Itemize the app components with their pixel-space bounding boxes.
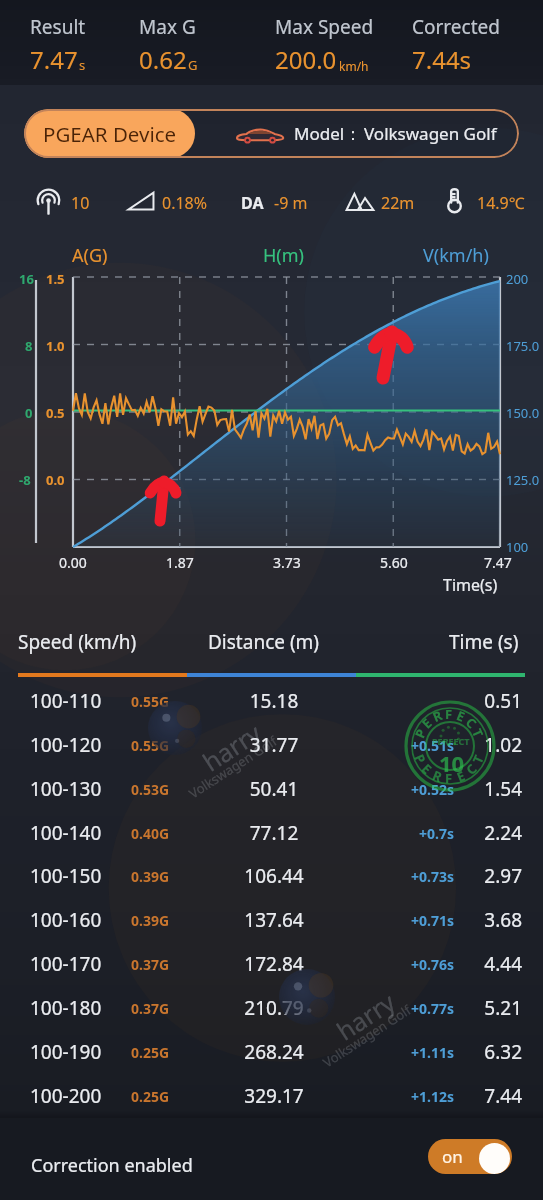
staticText: 7.44s (412, 43, 472, 76)
staticText: A(G) (72, 243, 108, 268)
staticText: G (188, 56, 198, 74)
staticText: -8 (19, 471, 31, 489)
staticText: harry (196, 716, 267, 778)
staticText: 0.55G (131, 692, 170, 711)
staticText: 150.0 (506, 404, 540, 422)
staticText: +1.12s (388, 1087, 454, 1106)
staticText: 0.53G (131, 780, 170, 799)
staticText: 0.39G (131, 911, 170, 930)
staticText: Time (s) (449, 629, 519, 655)
staticText: Volkswagen Golf (364, 122, 497, 145)
staticText: 1.54 (462, 776, 522, 802)
other: Slope (128, 191, 154, 211)
staticText: Volkswagen Golf (319, 1001, 415, 1071)
staticText: 0.51 (462, 688, 522, 714)
button[interactable]: 100-150 (0, 855, 543, 898)
button[interactable]: 100-190 (0, 1031, 543, 1074)
staticText: Volkswagen Golf (185, 732, 281, 802)
staticText: +0.77s (388, 999, 454, 1018)
staticText: 1.02 (462, 732, 522, 758)
staticText: 0.40G (131, 824, 170, 843)
staticText: +0.71s (388, 911, 454, 930)
staticText: 31.77 (200, 732, 348, 758)
staticText: 3.68 (462, 907, 522, 933)
staticText: 77.12 (200, 820, 348, 846)
staticText: 50.41 (200, 776, 348, 802)
staticText: 0.62 (139, 43, 187, 76)
staticText: 100-180 (30, 995, 102, 1021)
staticText: 100-130 (30, 776, 102, 802)
staticText: 100-160 (30, 907, 102, 933)
staticText: s (79, 56, 86, 74)
staticText: 2.24 (462, 820, 522, 846)
staticText: 100-190 (30, 1039, 102, 1065)
staticText: 175.0 (506, 337, 540, 355)
staticText: Model： (294, 122, 362, 145)
staticText: Distance (m) (208, 629, 320, 655)
button[interactable]: 100-170 (0, 943, 543, 986)
button[interactable]: 100-200 (0, 1075, 543, 1118)
staticText: 100-150 (30, 863, 102, 889)
button[interactable]: 100-120 (0, 724, 543, 767)
other: Temperature (446, 187, 463, 213)
staticText: 8 (25, 337, 33, 355)
staticText: 125.0 (506, 471, 540, 489)
staticText: T (468, 752, 488, 766)
staticText: 210.79 (200, 995, 348, 1021)
button[interactable]: 100-110 (0, 680, 543, 723)
staticText: 0.00 (59, 553, 87, 572)
staticText: Correction enabled (31, 1153, 193, 1178)
staticText (388, 692, 454, 711)
button[interactable]: PGEAR Device (24, 109, 519, 158)
staticText: Max Speed (275, 14, 374, 40)
button[interactable]: Correction toggle on (428, 1139, 512, 1174)
staticText: C (462, 759, 481, 779)
staticText: 15.18 (200, 688, 348, 714)
staticText: Time(s) (443, 574, 498, 596)
staticText: E (454, 766, 468, 786)
staticText: 0.55G (131, 736, 170, 755)
staticText: 4.44 (462, 951, 522, 977)
button[interactable]: 100-160 (0, 899, 543, 942)
staticText: Result (30, 14, 86, 40)
staticText: 5.60 (380, 553, 408, 572)
staticText: 268.24 (200, 1039, 348, 1065)
staticText: V(km/h) (423, 243, 489, 268)
button[interactable]: 100-130 (0, 768, 543, 811)
staticText: +0.76s (388, 955, 454, 974)
button[interactable]: 100-180 (0, 987, 543, 1030)
staticText: E (418, 714, 436, 732)
staticText: 0 (25, 404, 33, 422)
staticText: 0.5 (46, 404, 65, 422)
staticText: P (410, 725, 430, 741)
staticText: harry (330, 985, 401, 1047)
staticText: Corrected (412, 14, 500, 40)
staticText: 100 (506, 538, 529, 556)
staticText: 0.37G (131, 955, 170, 974)
button[interactable]: 100-140 (0, 812, 543, 855)
staticText: 7.47 (30, 43, 78, 76)
staticText: Speed (km/h) (18, 629, 137, 655)
staticText: 0.25G (131, 1043, 170, 1062)
staticText: +0.73s (388, 867, 454, 886)
staticText: 100-140 (30, 820, 102, 846)
staticText: 100-170 (30, 951, 102, 977)
staticText: PERFECT (432, 735, 470, 747)
staticText: 1.87 (166, 553, 194, 572)
staticText: 200 (506, 270, 529, 288)
other: Altitude (346, 192, 374, 211)
staticText: P (410, 751, 430, 767)
staticText: 329.17 (200, 1083, 348, 1109)
staticText: 7.44 (462, 1083, 522, 1109)
staticText: 137.64 (200, 907, 348, 933)
staticText: 1.5 (46, 270, 65, 288)
other: GPS satellites (35, 188, 62, 215)
staticText: 100-110 (30, 688, 102, 714)
staticText: 200.0 (275, 43, 337, 76)
staticText: DA (241, 192, 264, 214)
staticText: R (430, 706, 445, 726)
staticText: 10 (71, 192, 90, 214)
staticText: PGEAR Device (43, 120, 177, 148)
staticText: +0.51s (388, 736, 454, 755)
staticText: 16 (19, 270, 34, 288)
